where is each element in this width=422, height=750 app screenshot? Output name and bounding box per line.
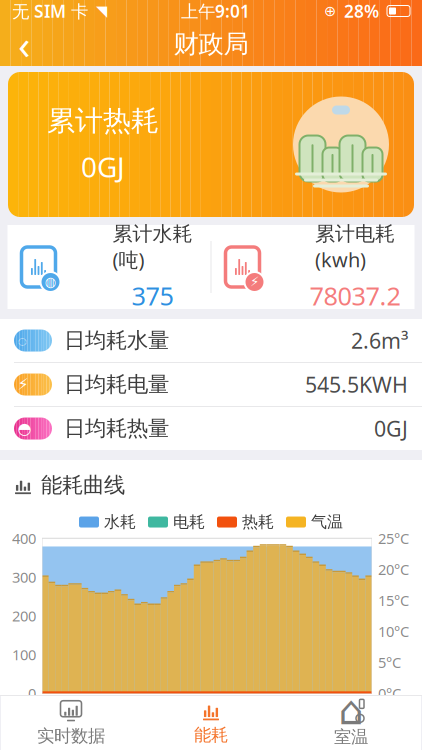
staticText: 300 [12, 567, 36, 587]
button[interactable]: ⚡︎ [0, 363, 422, 406]
staticText: 电耗 [173, 512, 205, 532]
staticText: ⊕ [324, 3, 336, 19]
staticText: 累计水耗(吨) [112, 222, 192, 273]
button[interactable]: ◍ [7, 225, 210, 309]
button[interactable]: 能耗 [141, 696, 281, 750]
staticText: 无 SIM 卡 [12, 0, 88, 22]
staticText: 78037.2 [309, 279, 400, 312]
staticText: 200 [12, 606, 36, 626]
staticText: 能耗曲线 [41, 472, 125, 498]
staticText: 热耗 [242, 512, 274, 532]
button[interactable]: ◌ [0, 319, 422, 362]
staticText: 400 [12, 529, 36, 548]
staticText: ◥ [96, 3, 107, 19]
staticText: 28% [344, 0, 379, 22]
staticText: 545.5KWH [305, 370, 408, 399]
staticText: 5°C [378, 653, 401, 672]
staticText: ⚡︎ [250, 274, 259, 289]
staticText: ⚡︎ [17, 375, 28, 394]
staticText: ◍ [44, 274, 56, 289]
staticText: ◓ [17, 419, 31, 438]
staticText: 室温 [334, 726, 368, 748]
button[interactable]: ⚡︎ [211, 225, 414, 309]
staticText: 能耗 [194, 724, 228, 746]
staticText: 10°C [378, 622, 409, 641]
staticText: 日均耗热量 [64, 415, 169, 442]
staticText: 财政局 [173, 28, 248, 59]
button[interactable]: Back [0, 22, 48, 66]
staticText: 20°C [378, 560, 409, 579]
staticText: 日均耗电量 [64, 371, 169, 398]
staticText: 15°C [378, 591, 409, 610]
staticText: ◌ [17, 330, 27, 351]
staticText: 水耗 [104, 512, 136, 532]
staticText: 累计电耗(kwh) [315, 222, 395, 273]
staticText: 25°C [378, 529, 409, 548]
staticText: 0GJ [81, 148, 125, 185]
button[interactable]: ◓ [0, 407, 422, 450]
staticText: 0°C [378, 684, 401, 703]
staticText: 2.6m³ [351, 326, 408, 355]
staticText: 气温 [311, 512, 343, 532]
staticText: 375 [131, 279, 173, 312]
staticText: 日均耗水量 [64, 327, 169, 354]
staticText: 累计热耗 [47, 104, 159, 138]
staticText: 实时数据 [37, 725, 105, 747]
button[interactable]: ⌂ [281, 696, 421, 750]
staticText: 0 [28, 684, 36, 703]
staticText: 100 [12, 645, 36, 664]
staticText: 0GJ [374, 414, 408, 443]
staticText: ‹ [18, 17, 30, 70]
button[interactable]: 实时数据 [1, 696, 141, 750]
staticText: ⌂ [338, 688, 363, 733]
staticText: 上午9:01 [181, 0, 250, 22]
